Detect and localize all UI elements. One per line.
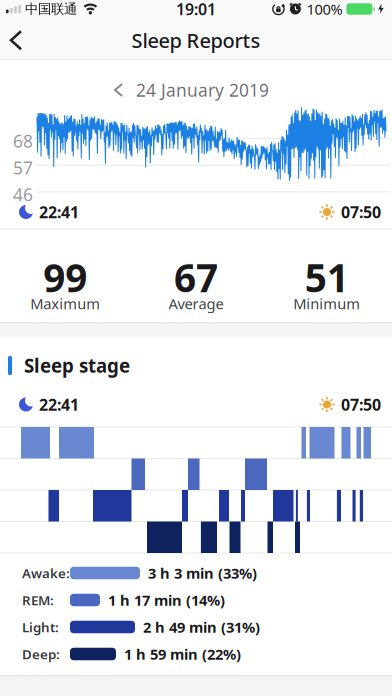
staticText: 24 January 2019: [136, 78, 269, 101]
staticText: 22:41: [39, 201, 79, 223]
staticText: Minimum: [293, 294, 360, 313]
staticText: 99: [43, 251, 87, 303]
staticText: Sleep Reports: [131, 27, 260, 54]
staticText: Light:: [22, 618, 59, 636]
staticText: REM:: [22, 591, 54, 609]
staticText: 57: [13, 156, 33, 179]
staticText: 51: [305, 251, 349, 303]
staticText: Average: [168, 294, 223, 313]
staticText: 46: [13, 183, 33, 206]
staticText: 100%: [306, 0, 342, 19]
staticText: Awake:: [22, 564, 70, 582]
staticText: 67: [174, 251, 218, 303]
staticText: Sleep stage: [24, 353, 130, 378]
staticText: 07:50: [341, 394, 381, 415]
staticText: 2 h 49 min (31%): [143, 617, 260, 637]
button[interactable]: Back: [0, 23, 41, 57]
staticText: 1 h 17 min (14%): [108, 590, 225, 610]
staticText: 中国联通: [25, 1, 77, 17]
staticText: Deep:: [22, 645, 60, 663]
button[interactable]: Previous day, 24 January 2019: [115, 78, 269, 101]
staticText: 68: [13, 129, 33, 152]
staticText: 22:41: [39, 394, 79, 415]
staticText: 19:01: [176, 0, 216, 20]
staticText: 1 h 59 min (22%): [124, 644, 241, 664]
staticText: 07:50: [341, 201, 381, 223]
staticText: Maximum: [30, 294, 100, 313]
staticText: 3 h 3 min (33%): [148, 563, 257, 583]
